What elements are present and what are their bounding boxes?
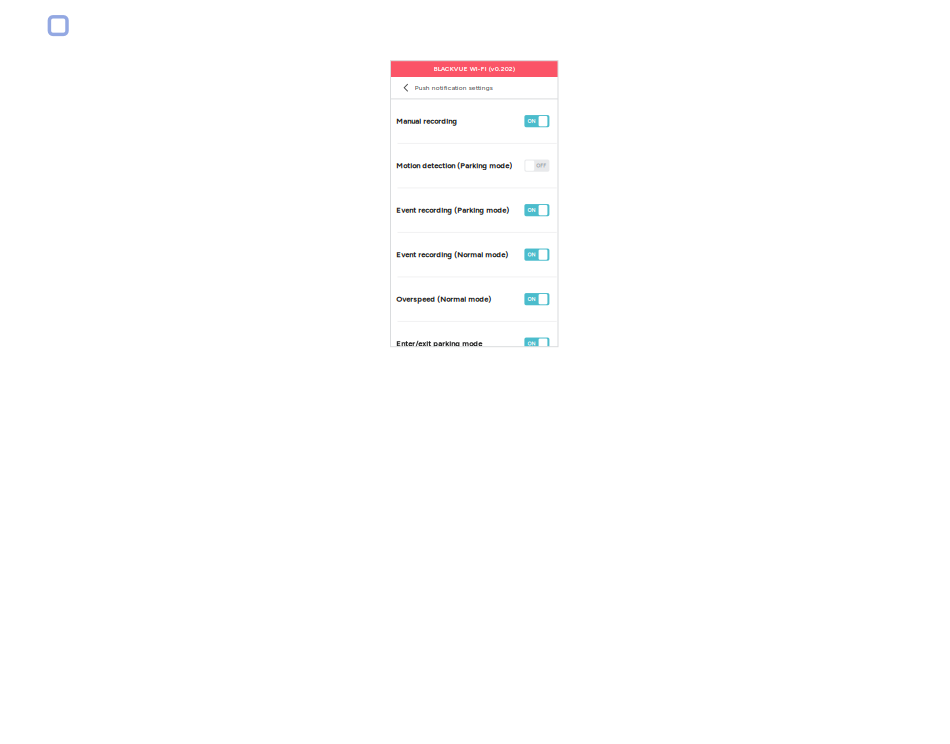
staticText: ON xyxy=(527,118,535,124)
staticText: ON xyxy=(527,296,535,302)
button[interactable]: Event recording (Normal mode) xyxy=(390,233,558,277)
staticText: Push notification settings xyxy=(415,84,493,92)
staticText: Manual recording xyxy=(396,116,457,126)
staticText: ON xyxy=(527,251,535,258)
button[interactable]: Push notification settings xyxy=(390,77,558,98)
staticText: Motion detection (Parking mode) xyxy=(396,161,512,170)
staticText: ON xyxy=(527,340,535,347)
staticText: Event recording (Parking mode) xyxy=(396,205,509,215)
staticText: Event recording (Normal mode) xyxy=(396,250,508,259)
staticText: ON xyxy=(527,207,535,213)
button[interactable]: Manual recording xyxy=(390,99,558,144)
button[interactable]: Motion detection (Parking mode) xyxy=(390,144,558,188)
staticText: Overspeed (Normal mode) xyxy=(396,294,491,304)
staticText: Enter/exit parking mode xyxy=(396,339,482,348)
button[interactable]: Event recording (Parking mode) xyxy=(390,188,558,233)
button[interactable]: Overspeed (Normal mode) xyxy=(390,277,558,322)
button[interactable]: Enter/exit parking mode xyxy=(390,322,558,366)
button[interactable]: App icon xyxy=(49,17,67,34)
staticText: OFF xyxy=(536,162,546,169)
staticText: BLACKVUE WI-FI (v0.202) xyxy=(434,65,515,73)
